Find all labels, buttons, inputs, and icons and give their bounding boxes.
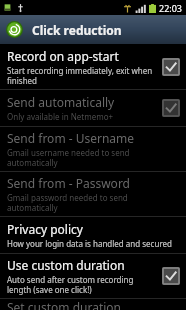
button[interactable]: Send from - Username	[0, 127, 186, 171]
staticText: Click reduction	[32, 22, 122, 38]
button[interactable]: Record on app-start	[0, 44, 186, 89]
staticText: Only available in Netmemo+	[7, 111, 114, 122]
staticText: Send from - Password	[7, 175, 130, 191]
other: App icon	[6, 21, 23, 38]
button[interactable]: Privacy policy	[0, 217, 186, 253]
button[interactable]: App icon	[0, 15, 186, 44]
staticText: Privacy policy	[7, 221, 83, 237]
staticText: Start recording immediately, exit when f…	[7, 65, 156, 86]
button[interactable]: Send from - Password	[0, 172, 186, 216]
button[interactable]: Set custom duration	[0, 299, 186, 310]
staticText: How your login data is handled and secur…	[7, 238, 172, 249]
button[interactable]: Send automatically	[0, 90, 186, 126]
staticText: Record on app-start	[7, 48, 119, 64]
staticText: Auto send after custom recording length …	[7, 274, 156, 295]
staticText: Send from - Username	[7, 130, 135, 146]
staticText: 22:03	[159, 2, 183, 14]
button[interactable]: Toggle	[162, 58, 180, 76]
staticText: Gmail password needed to send automatica…	[7, 192, 180, 213]
button[interactable]: Toggle	[162, 267, 180, 285]
button[interactable]: Use custom duration	[0, 254, 186, 298]
staticText: Use custom duration	[7, 257, 125, 273]
button[interactable]: Toggle	[162, 99, 180, 117]
staticText: Send automatically	[7, 94, 115, 110]
staticText: Gmail username needed to send automatica…	[7, 147, 180, 168]
staticText: Set custom duration	[7, 299, 122, 310]
